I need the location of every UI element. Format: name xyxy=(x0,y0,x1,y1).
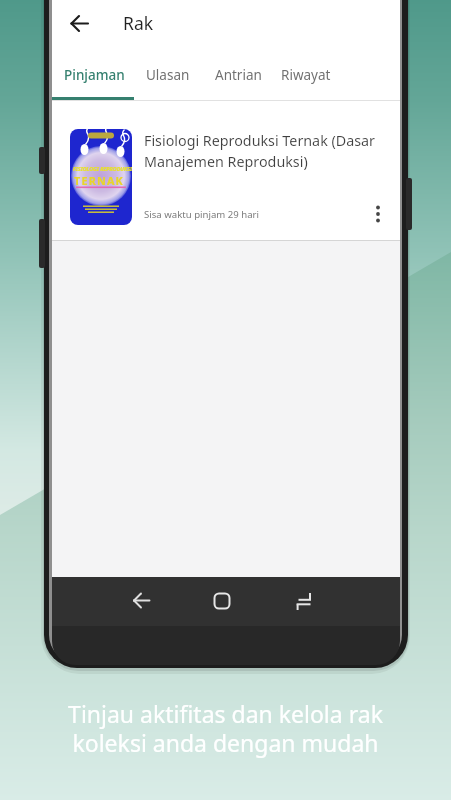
staticText: Rak xyxy=(123,11,154,35)
button[interactable]: Pinjaman xyxy=(64,58,134,92)
staticText: Riwayat xyxy=(281,66,331,84)
button[interactable]: FISIOLOGI REPRODUKSI xyxy=(52,101,400,240)
button[interactable] xyxy=(369,196,387,226)
button[interactable] xyxy=(63,7,96,40)
button[interactable]: Antrian xyxy=(215,58,285,92)
button[interactable]: Ulasan xyxy=(146,58,216,92)
staticText: Ulasan xyxy=(146,66,190,84)
button[interactable] xyxy=(125,584,158,617)
staticText: Pinjaman xyxy=(64,66,125,84)
button[interactable] xyxy=(213,592,231,610)
staticText: Fisiologi Reproduksi Ternak (Dasar Manaj… xyxy=(144,131,376,171)
staticText: Sisa waktu pinjam 29 hari xyxy=(144,208,259,221)
staticText: FISIOLOGI REPRODUKSI xyxy=(73,165,132,172)
button[interactable] xyxy=(294,590,314,612)
button[interactable]: Riwayat xyxy=(281,58,351,92)
staticText: TERNAK xyxy=(74,173,124,188)
staticText: Antrian xyxy=(215,66,262,84)
staticText: Tinjau aktifitas dan kelola rak koleksi … xyxy=(68,698,383,759)
